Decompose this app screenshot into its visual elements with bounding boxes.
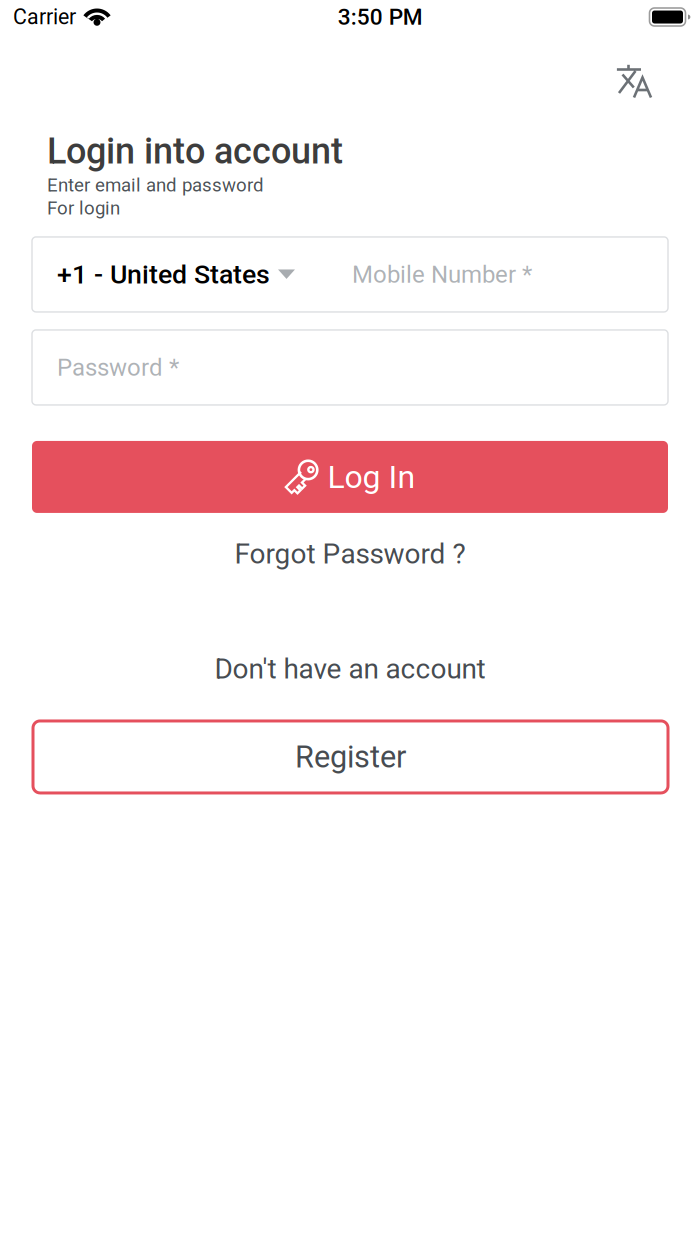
staticText: Enter email and password: [47, 174, 264, 196]
staticText: Forgot Password ?: [234, 537, 465, 570]
staticText: +1 - United States: [57, 259, 270, 290]
staticText: Login into account: [47, 130, 343, 172]
button[interactable]: Forgot Password ?: [32, 531, 668, 577]
staticText: Password *: [57, 353, 179, 381]
staticText: Log In: [327, 458, 415, 496]
staticText: For login: [47, 197, 120, 219]
staticText: Don't have an account: [214, 652, 485, 685]
staticText: Carrier: [13, 4, 76, 29]
button[interactable]: Log In: [32, 441, 668, 513]
staticText: Register: [295, 739, 406, 775]
button[interactable]: +1 - United States: [32, 237, 352, 312]
staticText: Mobile Number *: [352, 260, 532, 288]
button[interactable]: Register: [33, 721, 668, 793]
staticText: 3:50 PM: [338, 4, 423, 30]
button[interactable]: Change language: [616, 64, 654, 100]
